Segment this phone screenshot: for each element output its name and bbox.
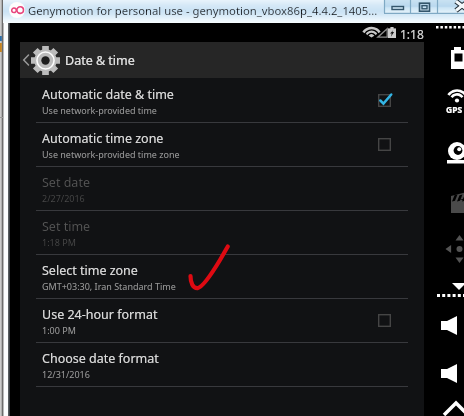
staticText: 2/27/2016 xyxy=(42,192,85,204)
staticText: Use 24-hour format xyxy=(42,306,158,323)
staticText: 1:00 PM xyxy=(42,324,76,336)
staticText: Set time xyxy=(42,218,91,235)
button[interactable]: Choose date format xyxy=(20,343,424,386)
staticText: Select time zone xyxy=(42,262,138,279)
staticText: 12/31/2016 xyxy=(42,368,90,380)
staticText: 1:18 PM xyxy=(42,236,76,248)
staticText: GPS xyxy=(446,104,463,116)
button: Set time xyxy=(20,211,424,254)
staticText: GMT+03:30, Iran Standard Time xyxy=(42,280,176,292)
staticText: Automatic time zone xyxy=(42,130,164,147)
staticText: Choose date format xyxy=(42,350,159,367)
button[interactable]: Emulator controls xyxy=(424,23,464,416)
staticText: 1:18 xyxy=(400,26,424,42)
staticText: Use network-provided time xyxy=(42,104,157,116)
button: Set date xyxy=(20,167,424,210)
staticText: Date & time xyxy=(65,52,135,69)
button[interactable]: Use 24-hour format xyxy=(20,299,424,342)
staticText: Genymotion for personal use - genymotion… xyxy=(28,3,378,18)
button[interactable]: Automatic time zone xyxy=(20,123,424,166)
button[interactable]: Select time zone xyxy=(20,255,424,298)
staticText: Set date xyxy=(42,174,90,191)
button[interactable]: Navigate up - Date & time xyxy=(20,42,424,78)
button[interactable]: Automatic date & time xyxy=(20,79,424,122)
staticText: Automatic date & time xyxy=(42,86,174,103)
staticText: Use network-provided time zone xyxy=(42,148,180,160)
button[interactable]: Window controls xyxy=(384,0,464,14)
